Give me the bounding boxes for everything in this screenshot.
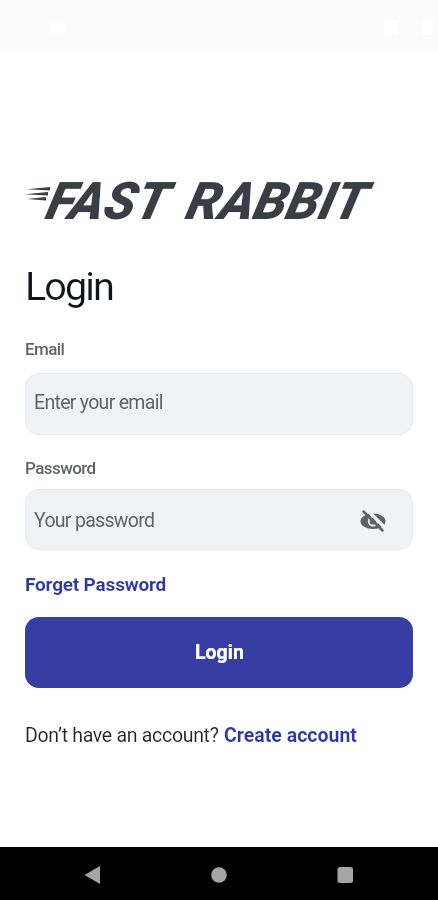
button[interactable]: Login (25, 617, 413, 688)
button[interactable] (321, 851, 369, 899)
button[interactable]: Forget Password (25, 570, 167, 592)
staticText: Don’t have an account? (25, 724, 224, 747)
staticText: Login (25, 263, 113, 309)
button[interactable] (25, 489, 413, 550)
staticText: Password (25, 458, 96, 478)
staticText: Create account (224, 724, 357, 747)
staticText: Login (195, 641, 244, 664)
staticText: FAST (44, 171, 165, 232)
staticText: Forget Password (25, 573, 167, 595)
button[interactable]: Create account (224, 724, 357, 747)
button[interactable] (25, 373, 413, 435)
button[interactable] (69, 851, 117, 899)
button[interactable] (354, 502, 392, 540)
staticText: Your password (34, 509, 155, 532)
staticText: Enter your email (34, 391, 163, 414)
staticText: RABBIT (184, 171, 363, 232)
staticText: Email (25, 339, 65, 359)
button[interactable] (195, 851, 243, 899)
